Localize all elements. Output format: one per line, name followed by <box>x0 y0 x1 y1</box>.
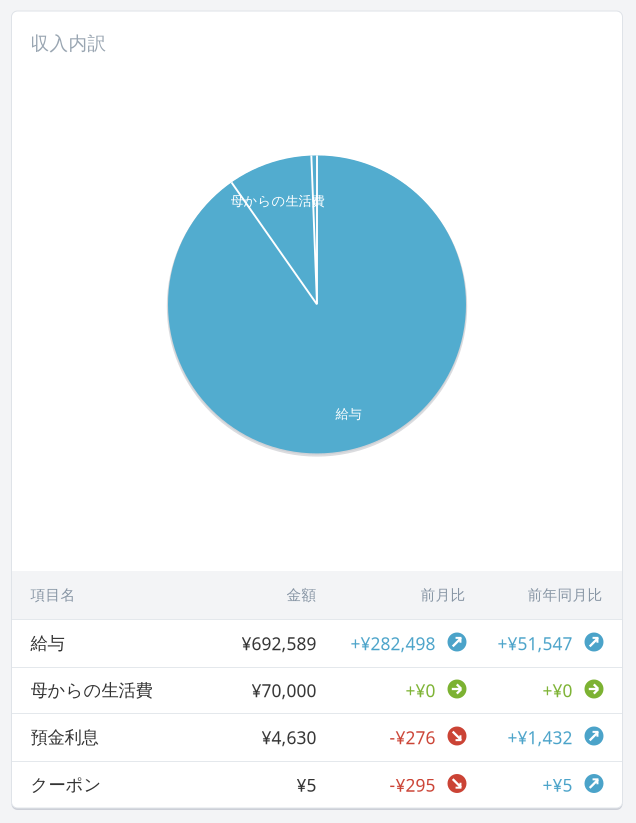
staticText: +¥51,547 <box>497 632 572 655</box>
staticText: 前月比 <box>420 586 465 604</box>
staticText: 金額 <box>286 586 316 604</box>
button[interactable]: 預金利息 <box>11 714 622 761</box>
staticText: +¥5 <box>542 773 572 796</box>
staticText: -¥295 <box>389 773 435 796</box>
staticText: 母からの生活費 <box>230 193 324 209</box>
button[interactable]: 給与 <box>11 620 622 667</box>
staticText: 収入内訳 <box>30 32 106 55</box>
staticText: +¥1,432 <box>507 726 572 749</box>
staticText: +¥0 <box>542 679 572 702</box>
staticText: 項目名 <box>30 586 75 604</box>
staticText: 給与 <box>30 633 64 654</box>
staticText: ¥5 <box>296 773 316 796</box>
staticText: ¥4,630 <box>261 726 316 749</box>
staticText: ¥692,589 <box>241 632 316 655</box>
button[interactable]: クーポン <box>11 762 622 808</box>
staticText: 給与 <box>335 406 361 422</box>
staticText: +¥0 <box>405 679 435 702</box>
staticText: -¥276 <box>389 726 435 749</box>
staticText: 母からの生活費 <box>30 680 152 701</box>
staticText: ¥70,000 <box>251 679 316 702</box>
button[interactable]: 母からの生活費 <box>11 668 622 713</box>
staticText: +¥282,498 <box>350 632 435 655</box>
staticText: 預金利息 <box>30 727 98 748</box>
staticText: 前年同月比 <box>527 586 602 604</box>
staticText: クーポン <box>30 774 101 796</box>
